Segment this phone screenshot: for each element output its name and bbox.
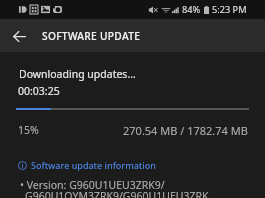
staticText: 00:03:25 <box>18 84 60 98</box>
staticText: Downloading updates… <box>19 67 136 81</box>
staticText: G960U1OYM3ZRK9/G960U1UEU3ZRK <box>25 189 209 198</box>
button[interactable]: Software update information <box>0 159 265 171</box>
staticText: 15% <box>18 123 39 137</box>
staticText: Software update information <box>31 159 156 171</box>
staticText: • Version: G960U1UEU3ZRK9/ <box>20 178 165 192</box>
staticText: 270.54 MB / 1782.74 MB <box>123 123 248 138</box>
button[interactable]: Back <box>6 23 32 49</box>
staticText: 84% <box>182 3 201 16</box>
staticText: SOFTWARE UPDATE <box>42 29 141 43</box>
staticText: 5:23 PM <box>212 3 247 16</box>
